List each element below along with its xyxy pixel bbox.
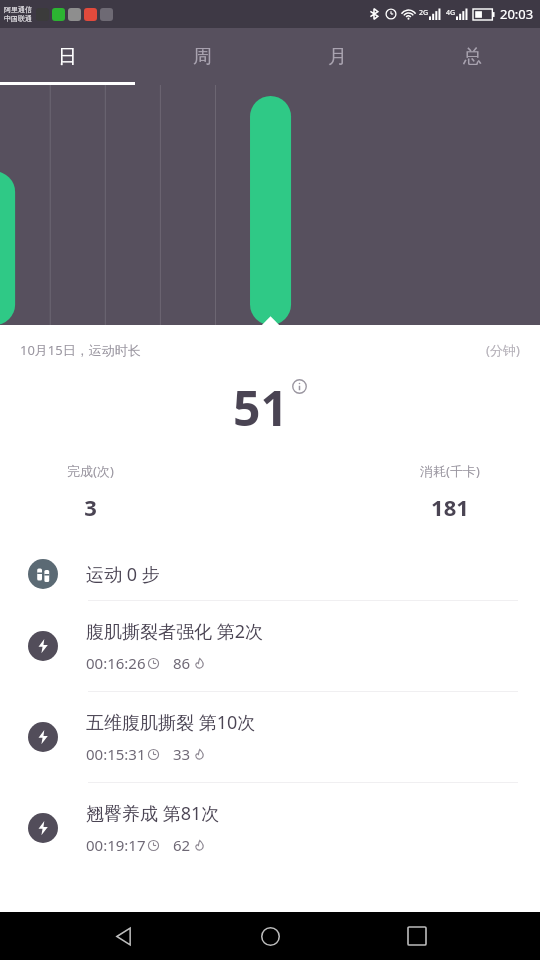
staticText: 完成(次) [67, 462, 114, 480]
button[interactable]: 腹肌撕裂者强化 第2次 [0, 601, 540, 691]
staticText: 周 [193, 45, 212, 69]
button[interactable]: 月 [270, 28, 405, 85]
staticText: 阿里通信 [4, 5, 32, 14]
staticText: 运动 0 步 [86, 562, 160, 587]
button[interactable]: 运动 0 步 [0, 548, 540, 600]
staticText: 00:19:17 [86, 835, 146, 855]
staticText: (分钟) [486, 341, 520, 359]
staticText: 五维腹肌撕裂 第10次 [86, 710, 256, 735]
button[interactable]: Recents [393, 912, 441, 960]
staticText: 消耗(千卡) [420, 462, 480, 480]
button[interactable]: Back [99, 912, 147, 960]
staticText: 33 [173, 744, 191, 764]
staticText: 腹肌撕裂者强化 第2次 [86, 619, 263, 644]
staticText: 中国联通 [4, 14, 32, 23]
staticText: 总 [463, 45, 482, 69]
button[interactable]: 日 [0, 28, 135, 85]
staticText: 00:15:31 [86, 744, 146, 764]
button[interactable]: 翘臀养成 第81次 [0, 783, 540, 873]
button[interactable]: 五维腹肌撕裂 第10次 [0, 692, 540, 782]
staticText: 62 [173, 835, 191, 855]
staticText: 181 [431, 492, 469, 522]
staticText: 00:16:26 [86, 653, 146, 673]
button[interactable]: 总 [405, 28, 540, 85]
button[interactable]: Home [246, 912, 294, 960]
staticText: 86 [173, 653, 191, 673]
button[interactable]: 周 [135, 28, 270, 85]
staticText: 51 [233, 375, 288, 440]
staticText: 4G [446, 8, 456, 18]
staticText: 日 [58, 45, 77, 69]
staticText: 2G [419, 8, 429, 18]
staticText: 10月15日，运动时长 [20, 341, 141, 359]
staticText: 3 [84, 492, 97, 522]
staticText: 翘臀养成 第81次 [86, 801, 220, 826]
staticText: 20:03 [500, 5, 534, 23]
button[interactable]: 信息 [292, 379, 307, 394]
staticText: 月 [328, 45, 347, 69]
